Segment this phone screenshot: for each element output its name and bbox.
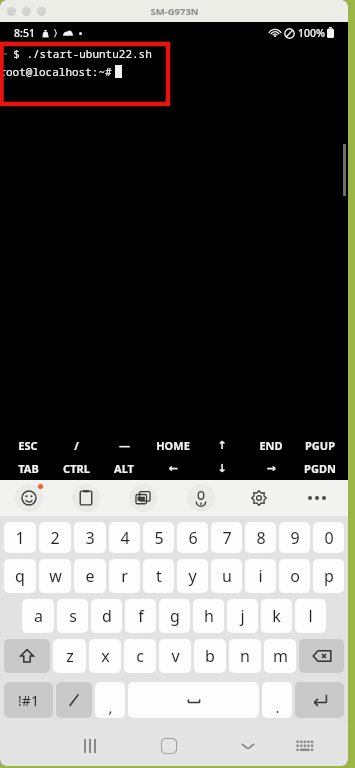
button[interactable]: Clipboard [71,483,101,513]
button[interactable]: PGUP [295,434,344,457]
button[interactable]: TAB [4,457,52,480]
button[interactable]: Backspace [299,639,344,673]
button[interactable]: PGDN [295,457,344,480]
button[interactable]: ALT [100,457,148,480]
button[interactable]: . [262,682,292,718]
button[interactable]: ESC [4,434,52,457]
staticText: l [308,605,313,627]
staticText: 5 [154,527,164,549]
button[interactable]: g [159,599,190,633]
button[interactable]: Space [128,682,259,718]
button[interactable]: 5 [143,522,174,553]
button[interactable]: ↑ [197,434,246,457]
button[interactable]: 2 [39,522,71,553]
staticText: r [121,565,128,587]
button[interactable]: v [159,639,191,673]
button[interactable]: n [229,639,261,673]
button[interactable] [22,7,31,16]
staticText: . [275,697,280,717]
button[interactable]: → [246,457,295,480]
button[interactable]: / [52,434,100,457]
button[interactable]: — [100,434,148,457]
button[interactable]: i [245,559,276,593]
button[interactable]: Shift [4,639,50,673]
staticText: PGDN [304,461,336,476]
staticText: ↓ [217,462,227,475]
button[interactable]: c [124,639,156,673]
staticText: SM-G973N [150,5,199,18]
staticText: s [69,605,77,627]
button[interactable]: j [227,599,258,633]
button[interactable]: h [193,599,224,633]
button[interactable]: Recents [68,726,112,766]
button[interactable]: 6 [177,522,208,553]
staticText: PGUP [305,438,335,453]
button[interactable]: Emoji [14,483,44,513]
staticText: d [102,605,112,627]
button[interactable]: Change keyboard [283,726,327,766]
button[interactable]: Hide keyboard [226,726,270,766]
button[interactable]: Language [56,682,92,718]
staticText: y [188,565,197,587]
button[interactable]: 1 [4,522,36,553]
button[interactable]: p [313,559,344,593]
button[interactable]: e [74,559,106,593]
button[interactable] [7,7,16,16]
staticText: a [34,605,43,627]
button[interactable]: , [95,682,125,718]
button[interactable]: 8 [245,522,276,553]
staticText: 0 [324,527,334,549]
button[interactable]: x [89,639,121,673]
button[interactable]: 4 [109,522,140,553]
button[interactable]: u [211,559,242,593]
button[interactable]: t [143,559,174,593]
button[interactable]: d [91,599,122,633]
button[interactable]: w [39,559,71,593]
staticText: ~ [1,46,8,61]
staticText: h [204,605,214,627]
button[interactable]: k [261,599,292,633]
staticText: p [324,565,334,587]
button[interactable]: a [22,599,54,633]
staticText: w [49,565,62,587]
button[interactable]: Voice input [186,483,216,513]
staticText: t [156,565,162,587]
button[interactable]: 0 [313,522,344,553]
staticText: v [171,645,180,667]
button[interactable]: s [57,599,88,633]
button[interactable]: More options [302,483,332,513]
button[interactable]: CTRL [52,457,100,480]
button[interactable]: l [295,599,326,633]
staticText: q [15,565,25,587]
button[interactable]: q [4,559,36,593]
button[interactable]: 3 [74,522,106,553]
staticText: TAB [18,461,39,476]
button[interactable]: Enter [295,682,344,718]
button[interactable]: !#1 [4,682,53,718]
button[interactable]: 7 [211,522,242,553]
staticText: 3 [85,527,95,549]
button[interactable]: z [53,639,86,673]
button[interactable]: Home [147,726,191,766]
button[interactable]: r [109,559,140,593]
staticText: o [290,565,300,587]
button[interactable]: y [177,559,208,593]
staticText: 7 [222,527,232,549]
button[interactable]: 9 [279,522,310,553]
staticText: 1 [15,527,25,549]
button[interactable]: ← [148,457,197,480]
button[interactable]: Settings [244,483,274,513]
button[interactable]: m [264,639,296,673]
staticText: c [136,645,144,667]
button[interactable]: Stickers [128,483,158,513]
staticText: ALT [114,461,134,476]
button[interactable]: ↓ [197,457,246,480]
staticText: END [259,438,283,453]
button[interactable]: END [246,434,295,457]
button[interactable]: o [279,559,310,593]
button[interactable]: HOME [148,434,197,457]
button[interactable]: b [194,639,226,673]
staticText: 8 [256,527,266,549]
button[interactable]: f [125,599,156,633]
button[interactable] [37,7,46,16]
